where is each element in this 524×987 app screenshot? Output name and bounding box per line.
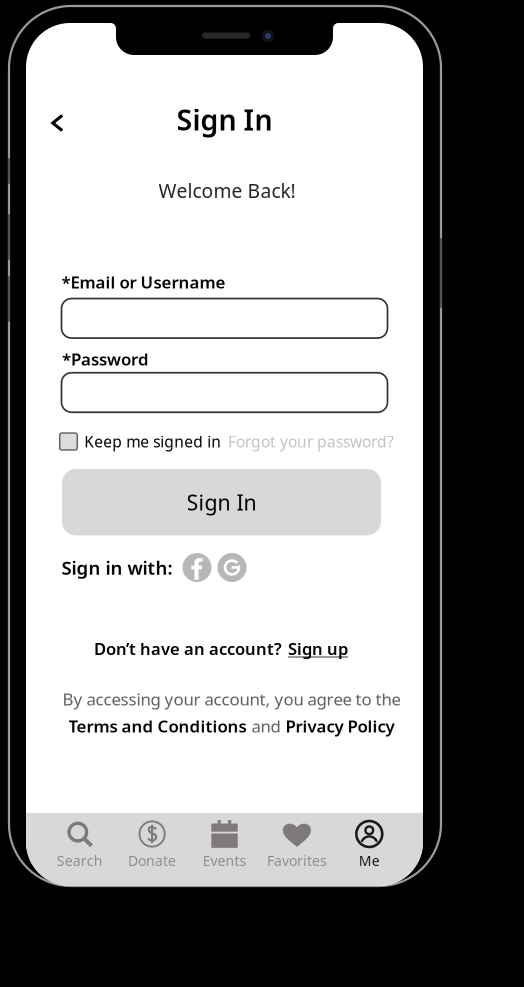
staticText: Don’t have an account? xyxy=(94,637,282,660)
staticText: and xyxy=(251,714,280,737)
staticText: By accessing your account, you agree to … xyxy=(62,688,400,710)
staticText: Events xyxy=(202,851,246,870)
staticText: Sign in with: xyxy=(61,555,172,580)
staticText: Sign In xyxy=(186,488,256,517)
button[interactable]: Forgot your password? xyxy=(228,429,394,453)
staticText: Sign In xyxy=(176,100,272,139)
staticText: Search xyxy=(57,851,103,870)
staticText: Donate xyxy=(128,851,176,870)
button[interactable]: Sign in with Facebook xyxy=(182,553,211,582)
staticText: *Password xyxy=(62,348,149,370)
button[interactable]: Donate xyxy=(116,813,188,886)
button[interactable]: Events xyxy=(188,813,261,886)
button[interactable]: Sign in with Google xyxy=(217,553,246,582)
staticText: Me xyxy=(359,851,380,870)
button[interactable]: Search xyxy=(43,813,116,886)
button[interactable]: Sign In xyxy=(62,469,381,535)
button[interactable]: Keep me signed in xyxy=(60,428,221,454)
staticText: Forgot your password? xyxy=(228,431,394,452)
staticText: Favorites xyxy=(267,851,327,870)
button[interactable]: Favorites xyxy=(261,813,333,886)
staticText: Keep me signed in xyxy=(84,431,221,452)
button[interactable]: Me xyxy=(333,813,405,886)
staticText: Privacy Policy xyxy=(285,714,394,737)
staticText: *Email or Username xyxy=(61,271,225,293)
staticText: Terms and Conditions xyxy=(68,714,246,737)
staticText: Sign up xyxy=(288,637,348,660)
staticText: Welcome Back! xyxy=(158,177,295,204)
button[interactable]: Don’t have an account? xyxy=(94,634,348,662)
button[interactable]: Back xyxy=(38,103,76,143)
